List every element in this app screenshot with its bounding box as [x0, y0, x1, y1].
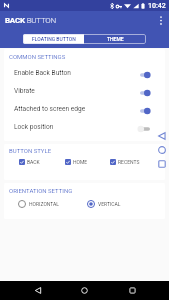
button[interactable]: HORIZONTAL: [18, 200, 60, 208]
button[interactable]: Recents: [122, 281, 143, 300]
button[interactable]: RECENTS: [110, 159, 140, 165]
button[interactable]: Home: [74, 281, 95, 300]
staticText: ORIENTATION SETTING: [9, 187, 73, 194]
staticText: Vibrate: [14, 87, 35, 95]
button[interactable]: Back: [27, 281, 48, 300]
button[interactable]: Enable Back Button: [4, 64, 165, 82]
button[interactable]: Recents: [155, 157, 168, 170]
staticText: Enable Back Button: [14, 69, 71, 77]
button[interactable]: HOME: [65, 159, 88, 165]
staticText: COMMON SETTINGS: [9, 53, 66, 60]
button[interactable]: Attached to screen edge: [4, 100, 165, 118]
button[interactable]: Vibrate: [4, 82, 165, 100]
staticText: BUTTON: [25, 16, 56, 25]
staticText: Lock position: [14, 123, 54, 131]
staticText: Attached to screen edge: [14, 105, 86, 113]
staticText: HOME: [73, 159, 88, 165]
button[interactable]: VERTICAL: [87, 200, 121, 208]
staticText: RECENTS: [118, 159, 140, 165]
staticText: BACK: [27, 159, 40, 165]
button[interactable]: THEME: [84, 34, 146, 44]
button[interactable]: Lock position: [4, 118, 165, 136]
button[interactable]: BACK: [19, 159, 40, 165]
button[interactable]: More options: [153, 11, 169, 30]
staticText: VERTICAL: [98, 201, 121, 207]
staticText: BACK: [5, 16, 25, 25]
staticText: THEME: [107, 36, 124, 42]
staticText: 10:42: [148, 2, 166, 10]
button[interactable]: Back: [155, 129, 168, 142]
button[interactable]: FLOATING BUTTON: [23, 34, 84, 44]
button[interactable]: Home: [155, 143, 168, 156]
staticText: FLOATING BUTTON: [32, 36, 76, 42]
staticText: BUTTON STYLE: [9, 147, 52, 154]
staticText: HORIZONTAL: [29, 201, 60, 207]
